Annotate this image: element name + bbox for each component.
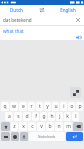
button[interactable]: k: [64, 112, 71, 121]
button[interactable]: w: [10, 102, 18, 111]
button[interactable]: i: [60, 102, 67, 111]
button[interactable]: p: [76, 102, 83, 111]
staticText: c: [31, 123, 34, 130]
staticText: i: [63, 103, 65, 110]
staticText: e: [22, 103, 25, 110]
button[interactable]: Backspace: [73, 122, 83, 131]
button[interactable]: Voice input: [20, 132, 28, 141]
staticText: x: [22, 123, 25, 130]
button[interactable]: t: [36, 102, 43, 111]
button[interactable]: dat betekend: [0, 14, 84, 25]
staticText: b: [48, 123, 52, 130]
button[interactable]: English: [51, 5, 84, 14]
button[interactable]: h: [48, 112, 55, 121]
button[interactable]: l: [72, 112, 79, 121]
button[interactable]: Shift: [1, 122, 10, 131]
staticText: t: [39, 103, 41, 110]
staticText: w: [12, 103, 16, 110]
button[interactable]: Clear text: [73, 15, 82, 24]
button[interactable]: Emoji: [11, 132, 19, 141]
staticText: z: [13, 123, 16, 130]
staticText: English: [60, 7, 76, 13]
button[interactable]: v: [37, 122, 45, 131]
button[interactable]: d: [23, 112, 31, 121]
button[interactable]: r: [28, 102, 35, 111]
button[interactable]: Listen to translation: [74, 34, 82, 40]
button[interactable]: u: [52, 102, 59, 111]
button[interactable]: g: [40, 112, 47, 121]
button[interactable]: Symbols: [1, 132, 10, 141]
staticText: j: [59, 113, 61, 120]
button[interactable]: a: [5, 112, 13, 121]
button[interactable]: q: [1, 102, 9, 111]
button[interactable]: n: [55, 122, 63, 131]
staticText: u: [54, 103, 58, 110]
button[interactable]: Swap languages: [33, 5, 51, 14]
button[interactable]: y: [44, 102, 51, 111]
staticText: q: [3, 103, 7, 110]
staticText: what that: [3, 28, 84, 34]
staticText: d: [25, 113, 29, 120]
staticText: r: [30, 103, 33, 110]
staticText: y: [46, 103, 49, 110]
staticText: dat betekend: [3, 17, 73, 23]
staticText: p: [78, 103, 82, 110]
button[interactable]: s: [14, 112, 22, 121]
button[interactable]: Dutch: [0, 5, 33, 14]
button[interactable]: o: [68, 102, 75, 111]
button[interactable]: Enter: [66, 132, 83, 141]
button[interactable]: Space: [29, 132, 65, 141]
button[interactable]: f: [32, 112, 39, 121]
button[interactable]: b: [46, 122, 54, 131]
staticText: v: [40, 123, 43, 130]
staticText: Dutch: [10, 7, 23, 13]
button[interactable]: x: [19, 122, 27, 131]
button[interactable]: m: [64, 122, 72, 131]
staticText: l: [75, 113, 77, 120]
button[interactable]: z: [11, 122, 18, 131]
staticText: Nederlands: [38, 135, 56, 139]
staticText: h: [50, 113, 54, 120]
staticText: m: [66, 123, 71, 130]
staticText: o: [70, 103, 74, 110]
staticText: f: [35, 113, 37, 120]
button[interactable]: e: [19, 102, 27, 111]
staticText: n: [57, 123, 61, 130]
staticText: g: [42, 113, 46, 120]
staticText: k: [66, 113, 69, 120]
button[interactable]: j: [56, 112, 63, 121]
button[interactable]: Resize keyboard: [70, 87, 81, 98]
staticText: a: [8, 113, 11, 120]
staticText: s: [17, 113, 20, 120]
button[interactable]: c: [28, 122, 36, 131]
